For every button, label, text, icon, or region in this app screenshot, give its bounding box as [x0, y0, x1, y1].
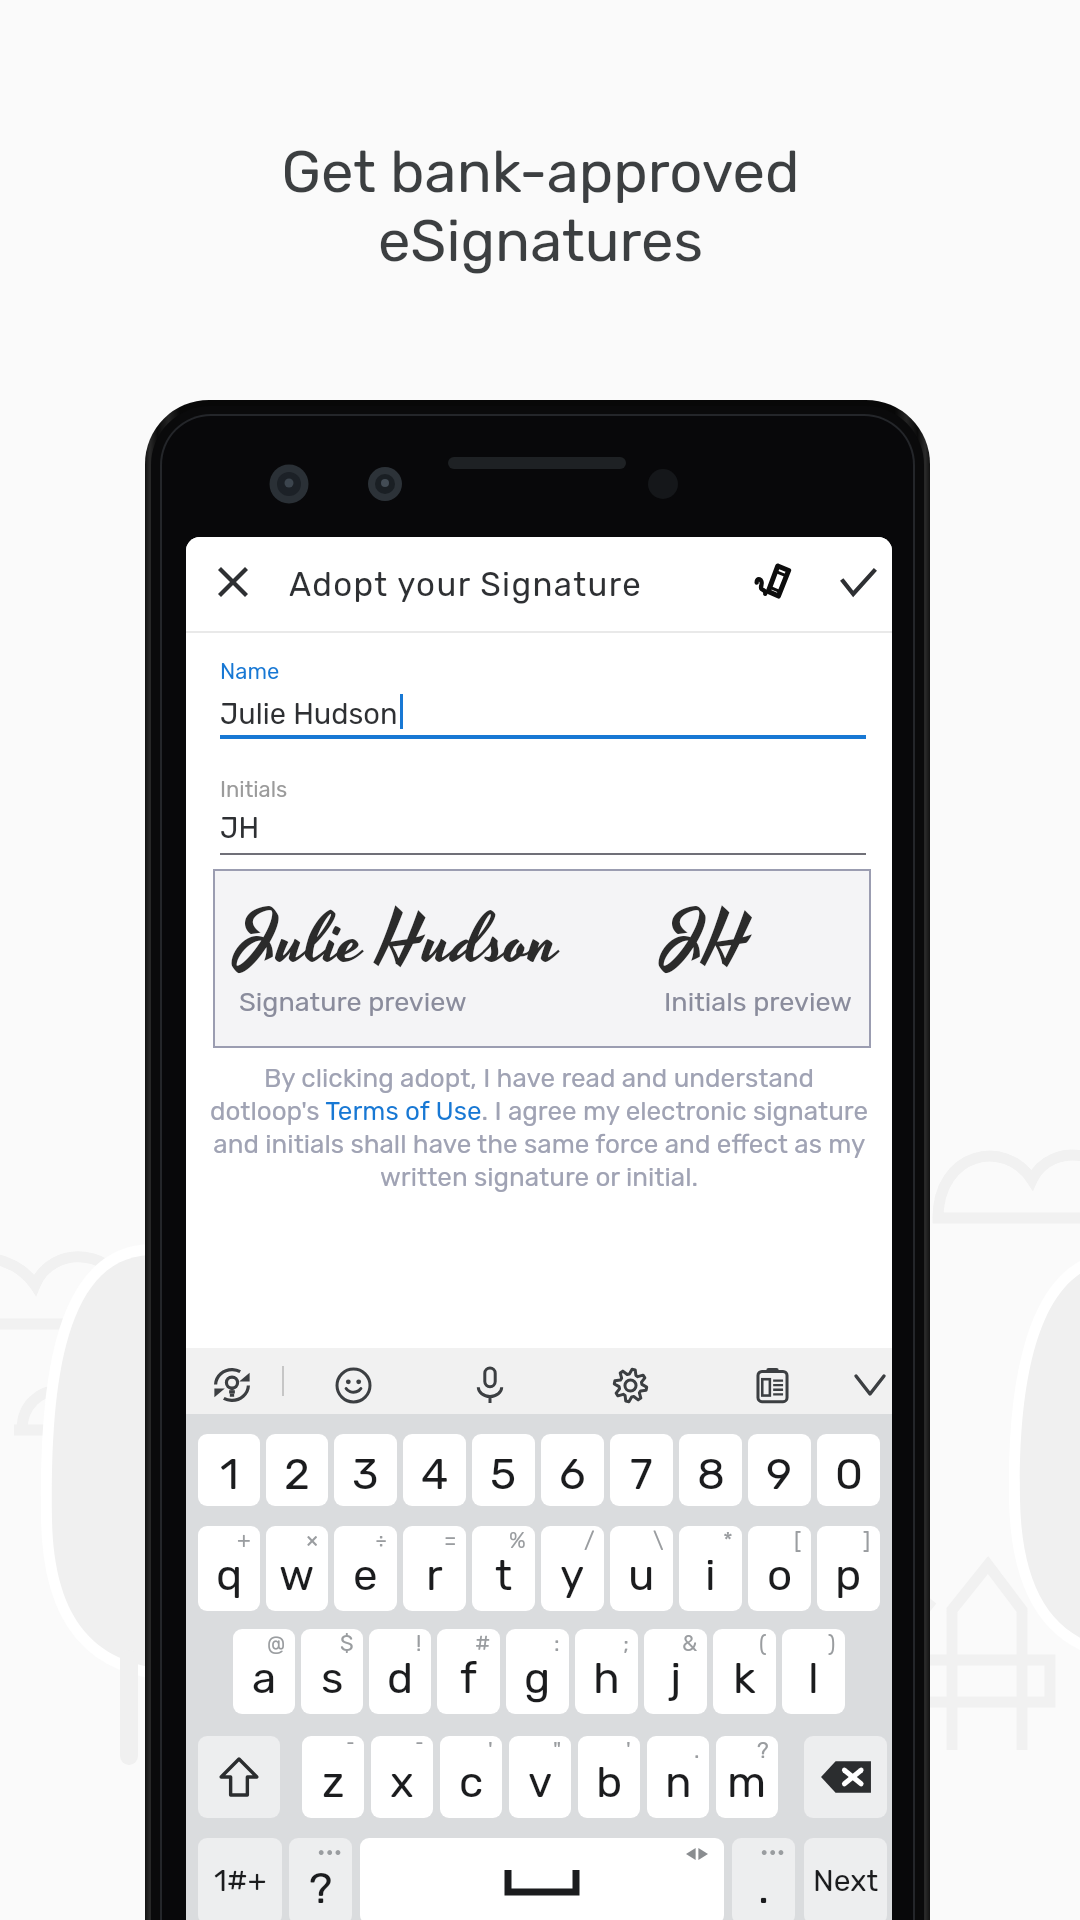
button[interactable]: a — [233, 1629, 295, 1714]
staticText: [ — [794, 1527, 802, 1553]
button[interactable]: j — [644, 1629, 707, 1714]
button[interactable]: z — [302, 1736, 364, 1818]
button[interactable]: 2 — [266, 1434, 328, 1506]
button[interactable]: f — [437, 1629, 500, 1714]
button[interactable]: Next — [804, 1838, 887, 1920]
button[interactable]: q — [198, 1526, 260, 1611]
button[interactable]: 9 — [748, 1434, 811, 1506]
button[interactable]: w — [266, 1526, 328, 1611]
staticText: ••• — [760, 1839, 786, 1865]
staticText: + — [237, 1527, 251, 1553]
button[interactable]: Done — [829, 553, 887, 611]
button[interactable]: . — [732, 1838, 795, 1920]
staticText: Julie Hudson — [220, 697, 398, 731]
button[interactable]: 6 — [541, 1434, 604, 1506]
button[interactable]: 1 — [198, 1434, 260, 1506]
staticText: 6 — [559, 1448, 586, 1500]
staticText: c — [459, 1756, 484, 1808]
staticText: 8 — [697, 1448, 725, 1500]
staticText: t — [495, 1549, 513, 1601]
button[interactable]: o — [748, 1526, 811, 1611]
staticText: # — [475, 1630, 491, 1656]
button[interactable]: Backspace — [804, 1736, 887, 1818]
staticText: h — [593, 1652, 620, 1704]
staticText: ] — [863, 1527, 871, 1553]
staticText: 7 — [630, 1448, 653, 1500]
button[interactable]: e — [334, 1526, 397, 1611]
button[interactable]: v — [509, 1736, 571, 1818]
button[interactable]: i — [679, 1526, 742, 1611]
staticText: " — [553, 1737, 562, 1763]
button[interactable]: Switch keyboard — [207, 1360, 257, 1410]
staticText: p — [835, 1549, 862, 1601]
staticText: x — [390, 1756, 414, 1808]
staticText: 2 — [284, 1448, 310, 1500]
button[interactable]: u — [610, 1526, 673, 1611]
button[interactable]: c — [440, 1736, 502, 1818]
staticText: ÷ — [375, 1527, 388, 1553]
staticText: m — [727, 1756, 767, 1808]
button[interactable]: Hide keyboard — [845, 1360, 892, 1410]
staticText: : — [554, 1630, 560, 1656]
button[interactable]: r — [403, 1526, 466, 1611]
staticText: q — [216, 1549, 243, 1601]
staticText: 3 — [352, 1448, 379, 1500]
staticText: j — [670, 1652, 682, 1704]
staticText: JH — [220, 811, 260, 845]
button[interactable]: 0 — [817, 1434, 880, 1506]
button[interactable]: d — [369, 1629, 431, 1714]
button[interactable]: 5 — [472, 1434, 535, 1506]
staticText: ' — [626, 1737, 631, 1763]
staticText: . — [694, 1737, 700, 1763]
staticText: b — [596, 1756, 623, 1808]
staticText: k — [733, 1652, 756, 1704]
staticText: Julie Hudson — [238, 891, 560, 995]
staticText: By clicking adopt, I have read and under… — [210, 1063, 868, 1193]
button[interactable]: t — [472, 1526, 535, 1611]
staticText: ; — [623, 1630, 629, 1656]
staticText: ! — [416, 1630, 422, 1656]
button[interactable]: b — [578, 1736, 640, 1818]
staticText: f — [460, 1652, 477, 1704]
staticText: ¯ — [346, 1737, 355, 1763]
staticText: 4 — [421, 1448, 449, 1500]
staticText: \ — [653, 1527, 664, 1553]
staticText: Adopt your Signature — [289, 565, 643, 604]
button[interactable]: n — [647, 1736, 709, 1818]
button[interactable]: g — [506, 1629, 569, 1714]
button[interactable]: y — [541, 1526, 604, 1611]
staticText: × — [306, 1527, 319, 1553]
button[interactable]: m — [716, 1736, 778, 1818]
button[interactable]: 1#+ — [198, 1838, 282, 1920]
button[interactable]: 4 — [403, 1434, 466, 1506]
button[interactable]: 8 — [679, 1434, 742, 1506]
button[interactable]: Close — [203, 552, 263, 612]
staticText: 0 — [835, 1448, 863, 1500]
staticText: d — [387, 1652, 414, 1704]
button[interactable]: Voice input — [465, 1360, 515, 1410]
staticText: 5 — [490, 1448, 517, 1500]
button[interactable]: s — [301, 1629, 363, 1714]
button[interactable]: l — [782, 1629, 845, 1714]
staticText: $ — [340, 1630, 354, 1656]
button[interactable]: k — [713, 1629, 776, 1714]
button[interactable]: Space — [360, 1838, 724, 1920]
button[interactable]: p — [817, 1526, 880, 1611]
button[interactable]: Clipboard — [747, 1360, 797, 1410]
staticText: ) — [828, 1630, 836, 1656]
staticText: @ — [267, 1630, 286, 1656]
staticText: Get bank-approved eSignatures — [281, 138, 800, 275]
button[interactable]: x — [371, 1736, 433, 1818]
button[interactable]: 7 — [610, 1434, 673, 1506]
staticText: & — [682, 1630, 698, 1656]
button[interactable]: Draw signature — [744, 553, 800, 609]
button[interactable]: h — [575, 1629, 638, 1714]
staticText: / — [584, 1527, 595, 1553]
button[interactable]: ? — [289, 1838, 352, 1920]
staticText: % — [509, 1527, 526, 1553]
button[interactable]: Settings — [605, 1360, 655, 1410]
button[interactable]: 3 — [334, 1434, 397, 1506]
staticText: JH — [665, 891, 754, 995]
button[interactable]: Shift — [198, 1736, 280, 1818]
button[interactable]: Emoji — [328, 1360, 378, 1410]
